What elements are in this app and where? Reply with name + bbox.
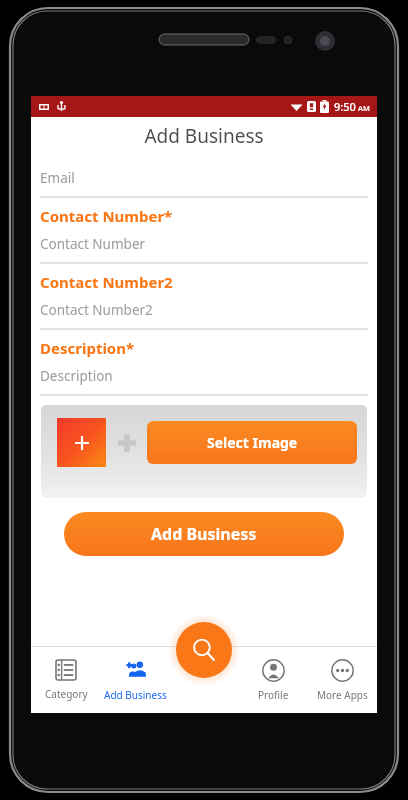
staticText: Add Business — [104, 688, 167, 702]
staticText: Add Business — [31, 123, 377, 149]
button[interactable]: Contact Number* — [31, 198, 377, 264]
staticText: Contact Number* — [40, 206, 173, 226]
button[interactable]: More Apps — [308, 647, 377, 713]
staticText: 9:50 — [334, 99, 356, 114]
button[interactable]: Add image — [57, 418, 106, 467]
staticText: Email — [40, 169, 75, 187]
staticText: Description* — [40, 338, 135, 358]
button[interactable]: Add Business — [101, 647, 170, 713]
button[interactable]: Email — [31, 167, 377, 198]
staticText: Profile — [258, 688, 289, 702]
button[interactable]: Search — [176, 622, 232, 678]
staticText: Contact Number2 — [40, 301, 153, 319]
button[interactable]: Profile — [239, 647, 308, 713]
staticText: Select Image — [207, 433, 298, 452]
button[interactable]: Category — [31, 647, 101, 713]
button[interactable]: Description* — [31, 330, 377, 396]
staticText: Contact Number — [40, 235, 146, 253]
button[interactable]: Select Image — [147, 421, 357, 464]
staticText: More Apps — [317, 688, 368, 702]
staticText: Description — [40, 367, 113, 385]
staticText: AM — [358, 103, 370, 113]
staticText: Contact Number2 — [40, 272, 173, 292]
staticText: Add Business — [151, 523, 257, 545]
button[interactable]: Contact Number2 — [31, 264, 377, 330]
staticText: Category — [45, 687, 88, 701]
button[interactable]: Add Business — [64, 512, 344, 556]
